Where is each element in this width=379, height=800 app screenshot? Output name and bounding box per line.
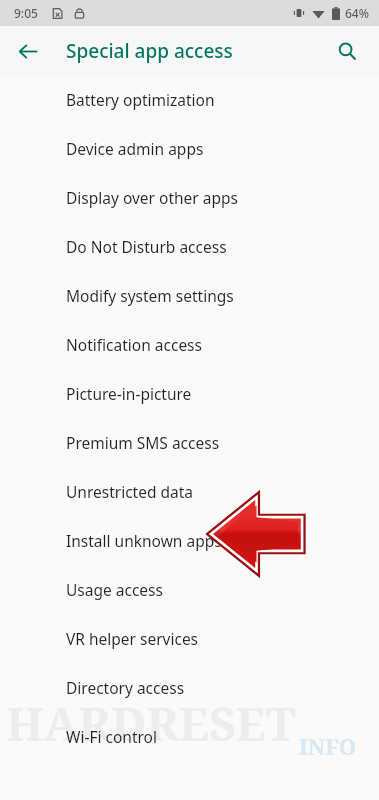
staticText: Do Not Disturb access bbox=[66, 236, 227, 257]
staticText: 64% bbox=[345, 5, 369, 21]
button[interactable]: Display over other apps bbox=[0, 173, 379, 222]
staticText: Notification access bbox=[66, 334, 202, 355]
button[interactable]: Unrestricted data bbox=[0, 467, 379, 516]
staticText: INFO bbox=[299, 731, 357, 761]
button[interactable]: Install unknown apps bbox=[0, 516, 379, 565]
staticText: Device admin apps bbox=[66, 138, 204, 159]
button[interactable]: Search bbox=[327, 31, 367, 71]
staticText: Usage access bbox=[66, 579, 163, 600]
staticText: VR helper services bbox=[66, 628, 199, 649]
staticText: Special app access bbox=[66, 38, 233, 64]
staticText: Premium SMS access bbox=[66, 432, 220, 453]
staticText: 9:05 bbox=[14, 5, 38, 21]
button[interactable]: Device admin apps bbox=[0, 124, 379, 173]
staticText: Directory access bbox=[66, 677, 185, 698]
staticText: Unrestricted data bbox=[66, 481, 194, 502]
button[interactable]: Premium SMS access bbox=[0, 418, 379, 467]
staticText: Install unknown apps bbox=[66, 530, 222, 551]
staticText: Picture-in-picture bbox=[66, 383, 192, 404]
button[interactable]: Do Not Disturb access bbox=[0, 222, 379, 271]
button[interactable]: Notification access bbox=[0, 320, 379, 369]
button[interactable]: Wi-Fi control bbox=[0, 712, 379, 761]
button[interactable]: Directory access bbox=[0, 663, 379, 712]
button[interactable]: Back bbox=[8, 31, 48, 71]
button[interactable]: VR helper services bbox=[0, 614, 379, 663]
button[interactable]: Modify system settings bbox=[0, 271, 379, 320]
button[interactable]: Usage access bbox=[0, 565, 379, 614]
button[interactable]: Battery optimization bbox=[0, 75, 379, 124]
button[interactable]: Picture-in-picture bbox=[0, 369, 379, 418]
staticText: Battery optimization bbox=[66, 89, 215, 110]
staticText: HARDRESET bbox=[6, 692, 379, 755]
staticText: Display over other apps bbox=[66, 187, 238, 208]
staticText: Wi-Fi control bbox=[66, 726, 157, 747]
staticText: Modify system settings bbox=[66, 285, 234, 306]
